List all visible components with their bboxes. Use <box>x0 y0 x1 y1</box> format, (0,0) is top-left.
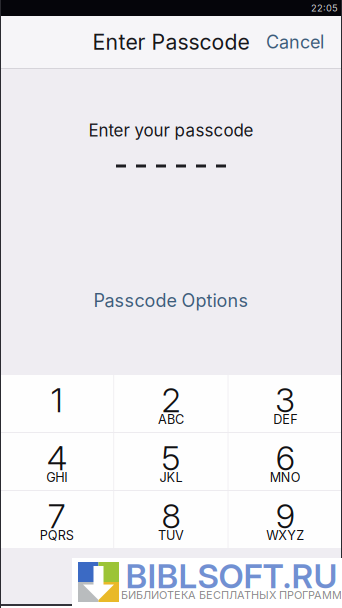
button[interactable]: 1 <box>0 375 113 432</box>
staticText: 8 <box>161 496 180 536</box>
button[interactable]: 5 <box>114 433 228 490</box>
staticText: 3 <box>275 380 295 420</box>
button[interactable]: 4 <box>0 433 113 490</box>
staticText: PQRS <box>40 528 74 543</box>
staticText: Cancel <box>266 31 324 53</box>
staticText: 22:05 <box>311 2 338 14</box>
staticText: 1 <box>51 380 63 420</box>
staticText: БИБЛИОТЕКА БЕСПЛАТНЫХ ПРОГРАММ <box>121 588 342 602</box>
staticText: TUV <box>158 528 184 543</box>
staticText: BIBLSOFT.RU <box>125 556 337 596</box>
staticText: 9 <box>276 496 295 536</box>
staticText: 6 <box>276 438 295 478</box>
button[interactable]: 2 <box>114 375 228 432</box>
staticText: GHI <box>46 470 67 485</box>
button[interactable]: 9 <box>229 491 342 548</box>
staticText: DEF <box>273 412 297 427</box>
staticText: Enter Passcode <box>92 29 249 55</box>
staticText: 7 <box>48 496 66 536</box>
staticText: WXYZ <box>266 528 304 543</box>
staticText: 2 <box>161 380 180 420</box>
button[interactable]: 8 <box>114 491 228 548</box>
staticText: Passcode Options <box>93 289 248 311</box>
button[interactable]: 7 <box>0 491 113 548</box>
staticText: ABC <box>158 412 184 427</box>
staticText: 5 <box>161 438 180 478</box>
staticText: JKL <box>159 470 182 485</box>
staticText: MNO <box>270 470 301 485</box>
staticText: Enter your passcode <box>88 120 253 140</box>
button[interactable]: 6 <box>229 433 342 490</box>
staticText: 4 <box>47 438 67 478</box>
button[interactable]: 3 <box>229 375 342 432</box>
button[interactable]: Cancel <box>266 31 342 53</box>
button[interactable]: Passcode Options <box>93 289 248 311</box>
